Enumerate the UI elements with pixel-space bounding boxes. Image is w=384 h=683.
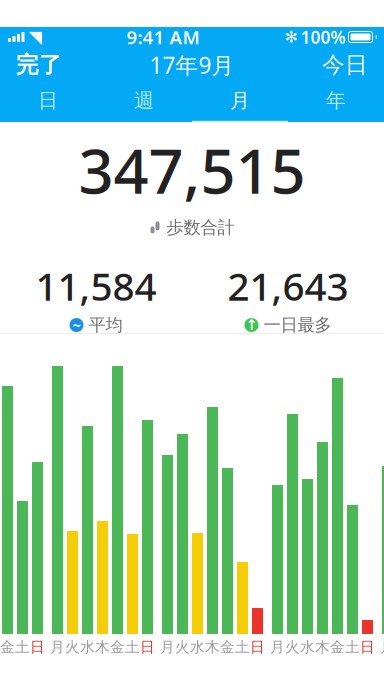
staticText: 火 xyxy=(285,638,300,656)
staticText: 金 xyxy=(220,638,235,656)
staticText: 年 xyxy=(326,88,346,113)
button[interactable]: 今日 xyxy=(306,45,384,85)
staticText: 9:41 AM xyxy=(126,25,199,49)
staticText: 土 xyxy=(345,638,360,656)
button[interactable]: 完了 xyxy=(0,45,78,85)
staticText: 月 xyxy=(380,638,384,656)
staticText: 日 xyxy=(30,638,45,656)
staticText: 今日 xyxy=(322,51,368,79)
button[interactable]: 週 xyxy=(96,83,192,122)
staticText: 火 xyxy=(175,638,190,656)
staticText: 歩数合計 xyxy=(166,217,234,238)
staticText: ~ xyxy=(72,315,80,335)
staticText: 月 xyxy=(230,88,250,113)
button[interactable]: 年 xyxy=(288,83,384,122)
staticText: 水 xyxy=(300,638,315,656)
staticText: 月 xyxy=(160,638,175,656)
staticText: 21,643 xyxy=(227,260,348,311)
staticText: 月 xyxy=(270,638,285,656)
staticText: 100% xyxy=(300,25,345,48)
staticText: 月 xyxy=(50,638,65,656)
staticText: ↑ xyxy=(245,317,257,333)
staticText: 火 xyxy=(65,638,80,656)
staticText: 日 xyxy=(360,638,375,656)
staticText: 木 xyxy=(95,638,110,656)
staticText: 11,584 xyxy=(35,260,156,311)
staticText: 日 xyxy=(250,638,265,656)
button[interactable]: 月 xyxy=(192,83,288,122)
staticText: 土 xyxy=(125,638,140,656)
staticText: 金 xyxy=(330,638,345,656)
staticText: 水 xyxy=(190,638,205,656)
staticText: ◥ xyxy=(28,27,41,47)
staticText: 347,515 xyxy=(78,129,305,211)
staticText: 水 xyxy=(80,638,95,656)
staticText: 17年9月 xyxy=(149,50,234,80)
staticText: ✻ xyxy=(284,28,297,46)
staticText: 土 xyxy=(235,638,250,656)
staticText: 土 xyxy=(15,638,30,656)
staticText: 木 xyxy=(315,638,330,656)
staticText: 日 xyxy=(140,638,155,656)
staticText: 木 xyxy=(205,638,220,656)
staticText: 金 xyxy=(110,638,125,656)
staticText: 平均 xyxy=(88,314,122,336)
staticText: 完了 xyxy=(16,51,62,79)
staticText: 週 xyxy=(134,88,154,113)
staticText: 金 xyxy=(0,638,15,656)
staticText: 日 xyxy=(38,88,58,113)
button[interactable]: 日 xyxy=(0,83,96,122)
staticText: 一日最多 xyxy=(263,314,331,336)
